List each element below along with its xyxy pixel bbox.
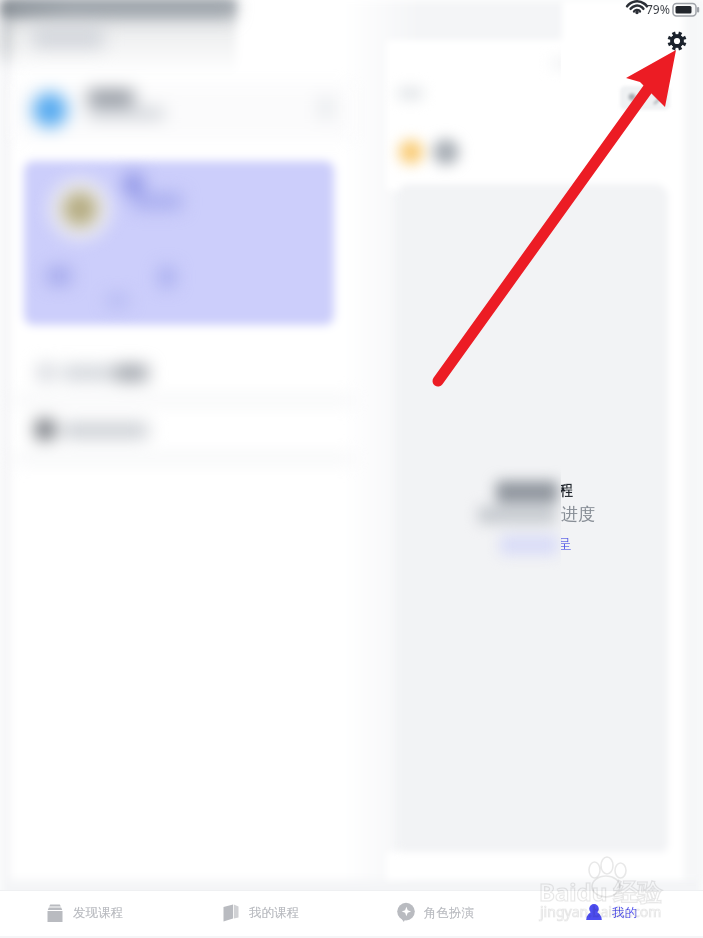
- staticText: 我的课程: [249, 905, 299, 921]
- staticText: jingyan.baidu.com: [540, 902, 662, 921]
- staticText: 呈: [558, 536, 572, 554]
- staticText: 我的: [612, 905, 637, 921]
- button[interactable]: Settings: [659, 23, 695, 59]
- button[interactable]: 我的: [584, 890, 637, 935]
- staticText: 79%: [646, 1, 670, 17]
- staticText: 角色扮演: [424, 905, 474, 921]
- staticText: 进度: [561, 504, 595, 525]
- staticText: 课程: [545, 482, 573, 500]
- button[interactable]: 角色扮演: [396, 890, 474, 935]
- button[interactable]: 发现课程: [45, 890, 123, 935]
- staticText: Baidu 经验: [539, 875, 662, 908]
- button[interactable]: 我的课程: [221, 890, 299, 935]
- staticText: 发现课程: [73, 905, 123, 921]
